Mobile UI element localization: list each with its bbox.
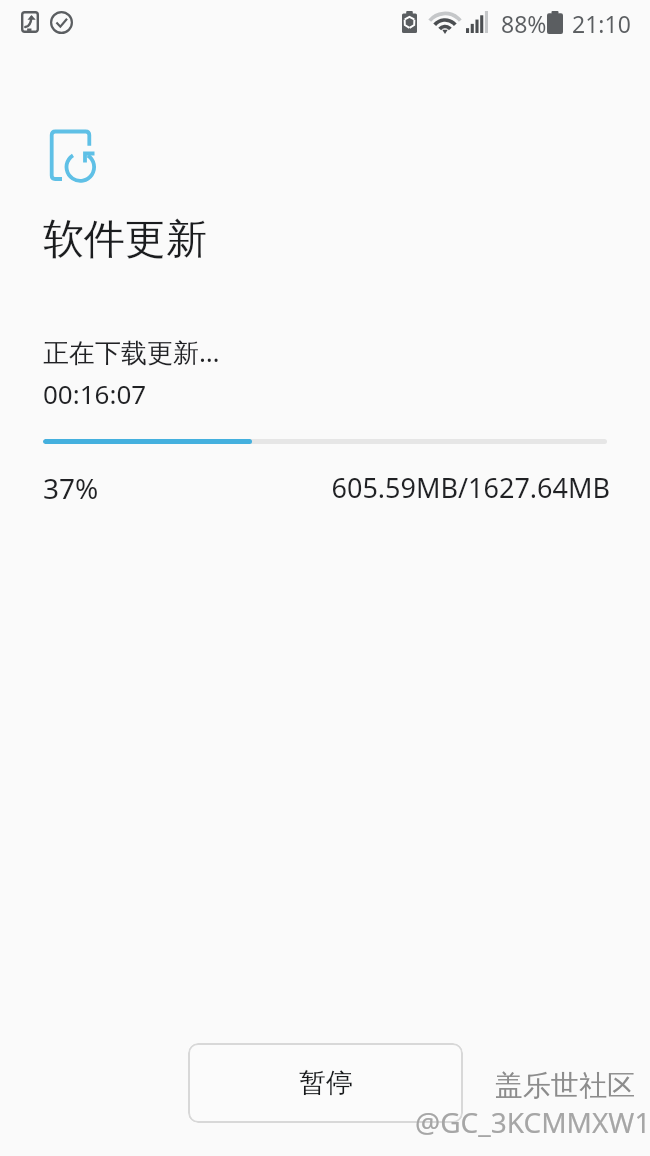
other: Power saving mode <box>402 11 417 33</box>
staticText: 暂停 <box>299 1066 353 1100</box>
button[interactable]: 暂停 <box>188 1043 463 1123</box>
staticText: 21:10 <box>572 8 631 39</box>
other: Completed <box>50 11 73 34</box>
staticText: 00:16:07 <box>43 376 147 411</box>
other: Wi-Fi <box>431 12 459 33</box>
staticText: 605.59MB/1627.64MB <box>46 469 610 506</box>
staticText: 37% <box>43 469 99 507</box>
staticText: 软件更新 <box>43 214 207 266</box>
other: Battery 88 percent <box>547 11 563 34</box>
staticText: 盖乐世社区 <box>495 1068 635 1103</box>
other: Mobile signal <box>466 11 488 33</box>
staticText: 88% <box>501 8 547 39</box>
other: Screen recorder <box>21 11 39 33</box>
staticText: 正在下载更新… <box>43 334 220 370</box>
other: Software update <box>45 125 101 187</box>
staticText: @GC_3KCMMXW1 <box>415 1103 650 1141</box>
